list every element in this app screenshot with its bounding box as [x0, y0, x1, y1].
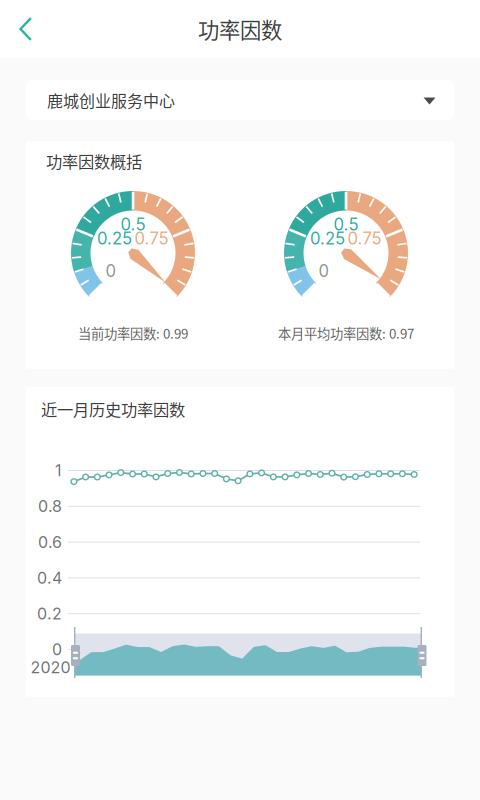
staticText: 0.2 — [37, 604, 62, 623]
staticText: 0.25 — [310, 228, 345, 249]
staticText: 0.8 — [38, 497, 62, 516]
staticText: 1 — [55, 461, 62, 480]
button[interactable]: 鹿城创业服务中心 — [26, 80, 454, 120]
staticText: 0.25 — [97, 228, 132, 249]
staticText: 本月平均功率因数: 0.97 — [278, 323, 414, 343]
staticText: 0 — [318, 261, 329, 281]
staticText: 0.75 — [347, 228, 381, 249]
staticText: 当前功率因数: 0.99 — [78, 323, 188, 343]
staticText: 0.5 — [120, 214, 145, 235]
staticText: 近一月历史功率因数 — [41, 397, 185, 421]
staticText: 0 — [52, 640, 62, 659]
staticText: 功率因数 — [198, 14, 282, 44]
button[interactable]: Back — [0, 0, 52, 58]
staticText: 0 — [105, 261, 116, 281]
staticText: 鹿城创业服务中心 — [47, 88, 175, 112]
staticText: 功率因数概括 — [46, 149, 142, 173]
staticText: 0.6 — [38, 532, 62, 552]
staticText: 0.4 — [37, 568, 62, 588]
staticText: 2020 — [31, 658, 71, 677]
staticText: 0.75 — [134, 228, 168, 249]
staticText: 0.5 — [333, 214, 358, 235]
